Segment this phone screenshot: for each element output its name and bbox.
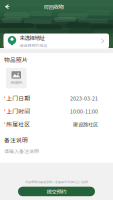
staticText: 请输入备注说明 — [4, 148, 39, 155]
staticText: 可回收物总重需达到一定重量才可预约上门回收 — [25, 180, 88, 184]
staticText: * — [4, 121, 6, 128]
button[interactable]: 未选择地址 — [3, 33, 109, 48]
staticText: 物品照片 — [4, 55, 28, 64]
staticText: 备注说明 — [4, 136, 28, 144]
button[interactable]: * — [0, 105, 113, 118]
staticText: 提交预约 — [46, 188, 66, 195]
staticText: 2023-03-21 — [70, 94, 98, 102]
staticText: * — [4, 95, 6, 102]
button[interactable]: * — [0, 92, 113, 105]
staticText: 未选择地址 — [19, 34, 44, 42]
staticText: 所属社区 — [6, 120, 30, 128]
staticText: 请选择预约地址 — [19, 42, 47, 48]
staticText: 上门时间 — [6, 107, 30, 115]
button[interactable]: 添加照片 — [6, 68, 26, 88]
button[interactable]: 返回 — [2, 1, 12, 12]
staticText: 建设路社区 — [73, 120, 98, 128]
staticText: 添加照片 — [10, 80, 22, 85]
staticText: 可回收物 — [43, 3, 63, 11]
button[interactable]: 提交预约 — [18, 187, 95, 196]
staticText: * — [4, 108, 6, 115]
staticText: 上门日期 — [6, 94, 30, 102]
button[interactable]: * — [0, 118, 113, 131]
staticText: 10:00-11:00 — [70, 107, 98, 115]
